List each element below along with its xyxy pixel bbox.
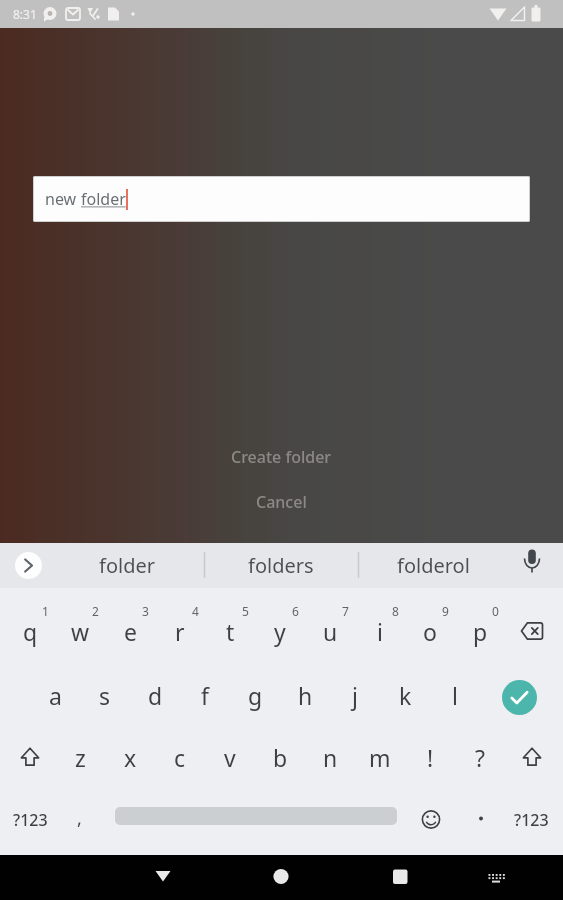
staticText: w: [71, 616, 90, 647]
button[interactable]: !: [407, 733, 453, 781]
staticText: b: [273, 742, 288, 773]
button[interactable]: [512, 545, 552, 585]
button[interactable]: c: [157, 733, 203, 781]
button[interactable]: 4: [187, 603, 203, 619]
staticText: o: [423, 616, 437, 647]
button[interactable]: m: [357, 733, 403, 781]
button[interactable]: 2: [87, 603, 103, 619]
button[interactable]: ?: [457, 733, 503, 781]
staticText: x: [124, 742, 137, 773]
button[interactable]: o: [407, 607, 453, 655]
button[interactable]: [509, 607, 555, 655]
button[interactable]: e: [107, 607, 153, 655]
staticText: folders: [248, 552, 314, 579]
button[interactable]: 8: [387, 603, 403, 619]
button[interactable]: [15, 552, 42, 579]
button[interactable]: g: [232, 671, 278, 719]
button[interactable]: [509, 733, 555, 781]
button[interactable]: 0: [487, 603, 503, 619]
button[interactable]: 7: [337, 603, 353, 619]
button[interactable]: x: [107, 733, 153, 781]
button[interactable]: s: [82, 671, 128, 719]
staticText: j: [352, 680, 358, 711]
button[interactable]: z: [57, 733, 103, 781]
button[interactable]: folders: [211, 543, 351, 587]
button[interactable]: 3: [137, 603, 153, 619]
button[interactable]: n: [307, 733, 353, 781]
staticText: !: [427, 742, 434, 773]
staticText: 6: [292, 603, 299, 619]
staticText: ,: [77, 806, 82, 831]
staticText: 0: [492, 603, 499, 619]
button[interactable]: folder: [57, 543, 197, 587]
staticText: d: [148, 680, 163, 711]
button[interactable]: j: [332, 671, 378, 719]
button[interactable]: [478, 855, 518, 900]
button[interactable]: 6: [287, 603, 303, 619]
staticText: folderol: [397, 552, 470, 579]
button[interactable]: Create folder: [171, 435, 391, 479]
button[interactable]: 1: [37, 603, 53, 619]
button[interactable]: [377, 855, 423, 900]
button[interactable]: h: [282, 671, 328, 719]
button[interactable]: p: [457, 607, 503, 655]
staticText: folder: [99, 552, 155, 579]
staticText: new: [45, 188, 81, 210]
staticText: y: [274, 616, 286, 647]
button[interactable]: i: [357, 607, 403, 655]
staticText: 8:31: [13, 6, 37, 22]
staticText: 7: [342, 603, 349, 619]
staticText: ?123: [13, 809, 48, 831]
button[interactable]: k: [382, 671, 428, 719]
staticText: r: [175, 616, 185, 647]
staticText: h: [298, 680, 313, 711]
button[interactable]: ?123: [505, 798, 557, 842]
staticText: 3: [142, 603, 149, 619]
button[interactable]: l: [432, 671, 478, 719]
button[interactable]: r: [157, 607, 203, 655]
button[interactable]: [461, 798, 501, 842]
button[interactable]: new: [33, 176, 530, 222]
button[interactable]: [502, 680, 537, 715]
staticText: ?: [475, 742, 485, 773]
staticText: l: [452, 680, 458, 711]
button[interactable]: [408, 798, 454, 842]
staticText: m: [369, 742, 391, 773]
button[interactable]: [140, 855, 186, 900]
staticText: p: [473, 616, 488, 647]
staticText: e: [124, 616, 137, 647]
button[interactable]: b: [257, 733, 303, 781]
staticText: ?123: [514, 809, 549, 831]
button[interactable]: a: [32, 671, 78, 719]
button[interactable]: u: [307, 607, 353, 655]
staticText: folder: [81, 188, 126, 210]
button[interactable]: Cancel: [201, 480, 361, 524]
staticText: 8: [392, 603, 399, 619]
staticText: n: [323, 742, 338, 773]
button[interactable]: v: [207, 733, 253, 781]
staticText: q: [23, 616, 38, 647]
button[interactable]: 9: [437, 603, 453, 619]
button[interactable]: ,: [59, 796, 99, 840]
staticText: f: [201, 680, 209, 711]
button[interactable]: d: [132, 671, 178, 719]
button[interactable]: ?123: [4, 798, 56, 842]
staticText: v: [224, 742, 236, 773]
button[interactable]: f: [182, 671, 228, 719]
button[interactable]: [258, 855, 304, 900]
staticText: k: [399, 680, 412, 711]
button[interactable]: y: [257, 607, 303, 655]
staticText: 1: [42, 603, 49, 619]
button[interactable]: folderol: [363, 543, 503, 587]
button[interactable]: t: [207, 607, 253, 655]
staticText: 5: [242, 603, 249, 619]
button[interactable]: [7, 733, 53, 781]
staticText: 2: [92, 603, 99, 619]
staticText: Create folder: [231, 446, 332, 468]
staticText: s: [99, 680, 111, 711]
staticText: g: [248, 680, 263, 711]
button[interactable]: q: [7, 607, 53, 655]
button[interactable]: 5: [237, 603, 253, 619]
button[interactable]: w: [57, 607, 103, 655]
